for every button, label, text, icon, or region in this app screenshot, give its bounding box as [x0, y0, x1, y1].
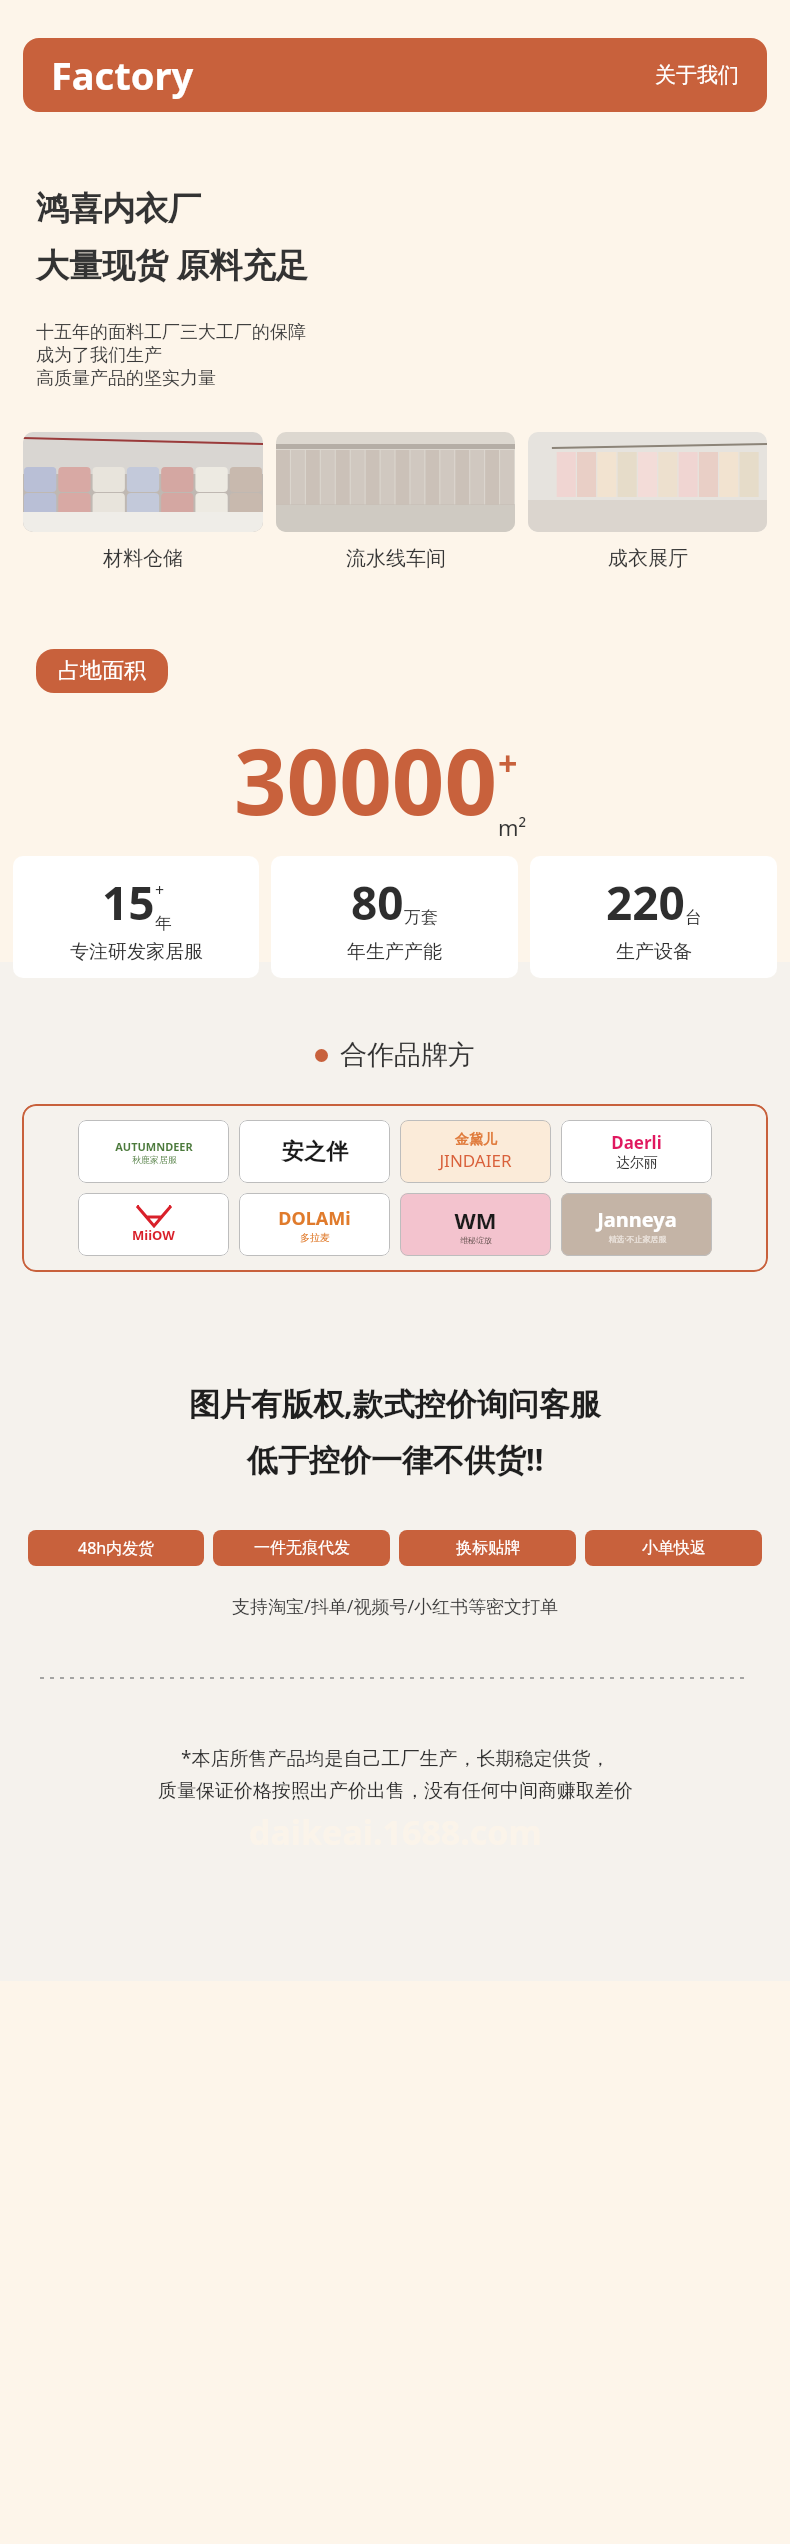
staticText: 年 [155, 913, 172, 934]
staticText: 万套 [404, 907, 438, 928]
button[interactable]: WM [400, 1193, 551, 1256]
button[interactable]: 换标贴牌 [399, 1530, 576, 1566]
staticText: 秋鹿家居服 [132, 1154, 177, 1165]
staticText: m² [498, 812, 527, 842]
staticText: 一件无痕代发 [254, 1538, 350, 1558]
staticText: Janneya [597, 1206, 677, 1233]
staticText: 图片有版权,款式控价询问客服 [189, 1382, 601, 1424]
staticText: + [155, 879, 165, 901]
staticText: 48h内发货 [78, 1537, 155, 1559]
staticText: 小单快返 [642, 1538, 706, 1558]
staticText: *本店所售产品均是自己工厂生产，长期稳定供货， [181, 1745, 610, 1771]
staticText: 精选·不止家居服 [608, 1233, 667, 1244]
staticText: 大量现货 原料充足 [36, 242, 309, 287]
staticText: 高质量产品的坚实力量 [36, 367, 216, 390]
staticText: Factory [51, 49, 194, 101]
staticText: 支持淘宝/抖单/视频号/小红书等密文打单 [232, 1594, 559, 1619]
staticText: Daerli [611, 1131, 662, 1154]
button[interactable]: AUTUMNDEER [78, 1120, 229, 1183]
button[interactable]: 安之伴 [239, 1120, 390, 1183]
button[interactable]: 金黛儿 [400, 1120, 551, 1183]
staticText: 达尔丽 [616, 1154, 658, 1172]
button[interactable]: 15 [13, 856, 259, 978]
staticText: AUTUMNDEER [115, 1139, 193, 1154]
staticText: 十五年的面料工厂三大工厂的保障 [36, 321, 306, 344]
staticText: 合作品牌方 [340, 1038, 475, 1072]
button[interactable]: Daerli [561, 1120, 712, 1183]
staticText: 年生产产能 [347, 940, 442, 964]
button[interactable]: 小单快返 [585, 1530, 762, 1566]
button[interactable]: 80 [271, 856, 518, 978]
staticText: 多拉麦 [300, 1231, 330, 1244]
staticText: 鸿喜内衣厂 [36, 188, 201, 230]
staticText: 成为了我们生产 [36, 344, 162, 367]
staticText: 维秘绽放 [460, 1235, 492, 1245]
button[interactable]: 48h内发货 [28, 1530, 204, 1566]
button[interactable]: MiiOW [78, 1193, 229, 1256]
staticText: JINDAIER [439, 1149, 512, 1172]
button[interactable]: 220 [530, 856, 777, 978]
staticText: WM [454, 1205, 497, 1235]
staticText: 安之伴 [282, 1138, 348, 1166]
staticText: MiiOW [132, 1226, 175, 1244]
staticText: 金黛儿 [455, 1131, 497, 1149]
staticText: 生产设备 [616, 940, 692, 964]
button[interactable] [23, 432, 263, 532]
staticText: 成衣展厅 [608, 546, 688, 571]
button[interactable] [276, 432, 515, 532]
staticText: DOLAMi [278, 1206, 351, 1231]
staticText: 质量保证价格按照出产价出售，没有任何中间商赚取差价 [158, 1779, 633, 1803]
button[interactable]: DOLAMi [239, 1193, 390, 1256]
button[interactable]: 占地面积 [36, 649, 168, 693]
staticText: 80 [351, 871, 404, 934]
staticText: 专注研发家居服 [70, 940, 203, 964]
button[interactable]: 一件无痕代发 [213, 1530, 390, 1566]
staticText: 关于我们 [655, 62, 739, 88]
staticText: 占地面积 [58, 657, 146, 685]
staticText: 低于控价一律不供货!! [247, 1438, 544, 1480]
staticText: + [498, 740, 518, 786]
button[interactable]: Janneya [561, 1193, 712, 1256]
staticText: 材料仓储 [103, 546, 183, 571]
staticText: 换标贴牌 [456, 1538, 520, 1558]
staticText: 流水线车间 [346, 546, 446, 571]
button[interactable]: Factory [23, 38, 767, 112]
staticText: 30000 [234, 717, 498, 842]
staticText: 220 [606, 871, 685, 934]
button[interactable] [528, 432, 767, 532]
staticText: 15 [102, 871, 155, 934]
staticText: 台 [685, 907, 702, 928]
